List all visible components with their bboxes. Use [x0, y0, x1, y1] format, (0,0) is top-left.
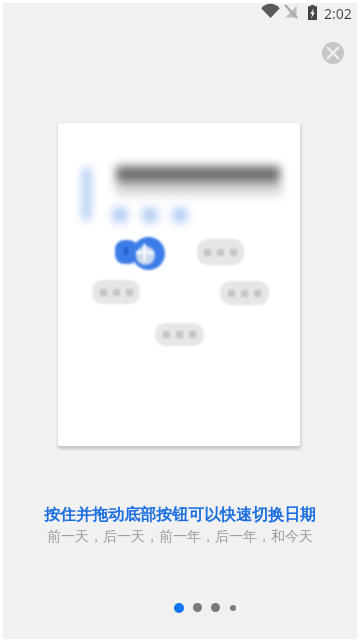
- staticText: 2:02: [324, 4, 352, 23]
- staticText: 按住并拖动底部按钮可以快速切换日期: [44, 505, 316, 525]
- staticText: 前一天，后一天，前一年，后一年，和今天: [47, 528, 313, 546]
- button[interactable]: Close: [318, 38, 347, 67]
